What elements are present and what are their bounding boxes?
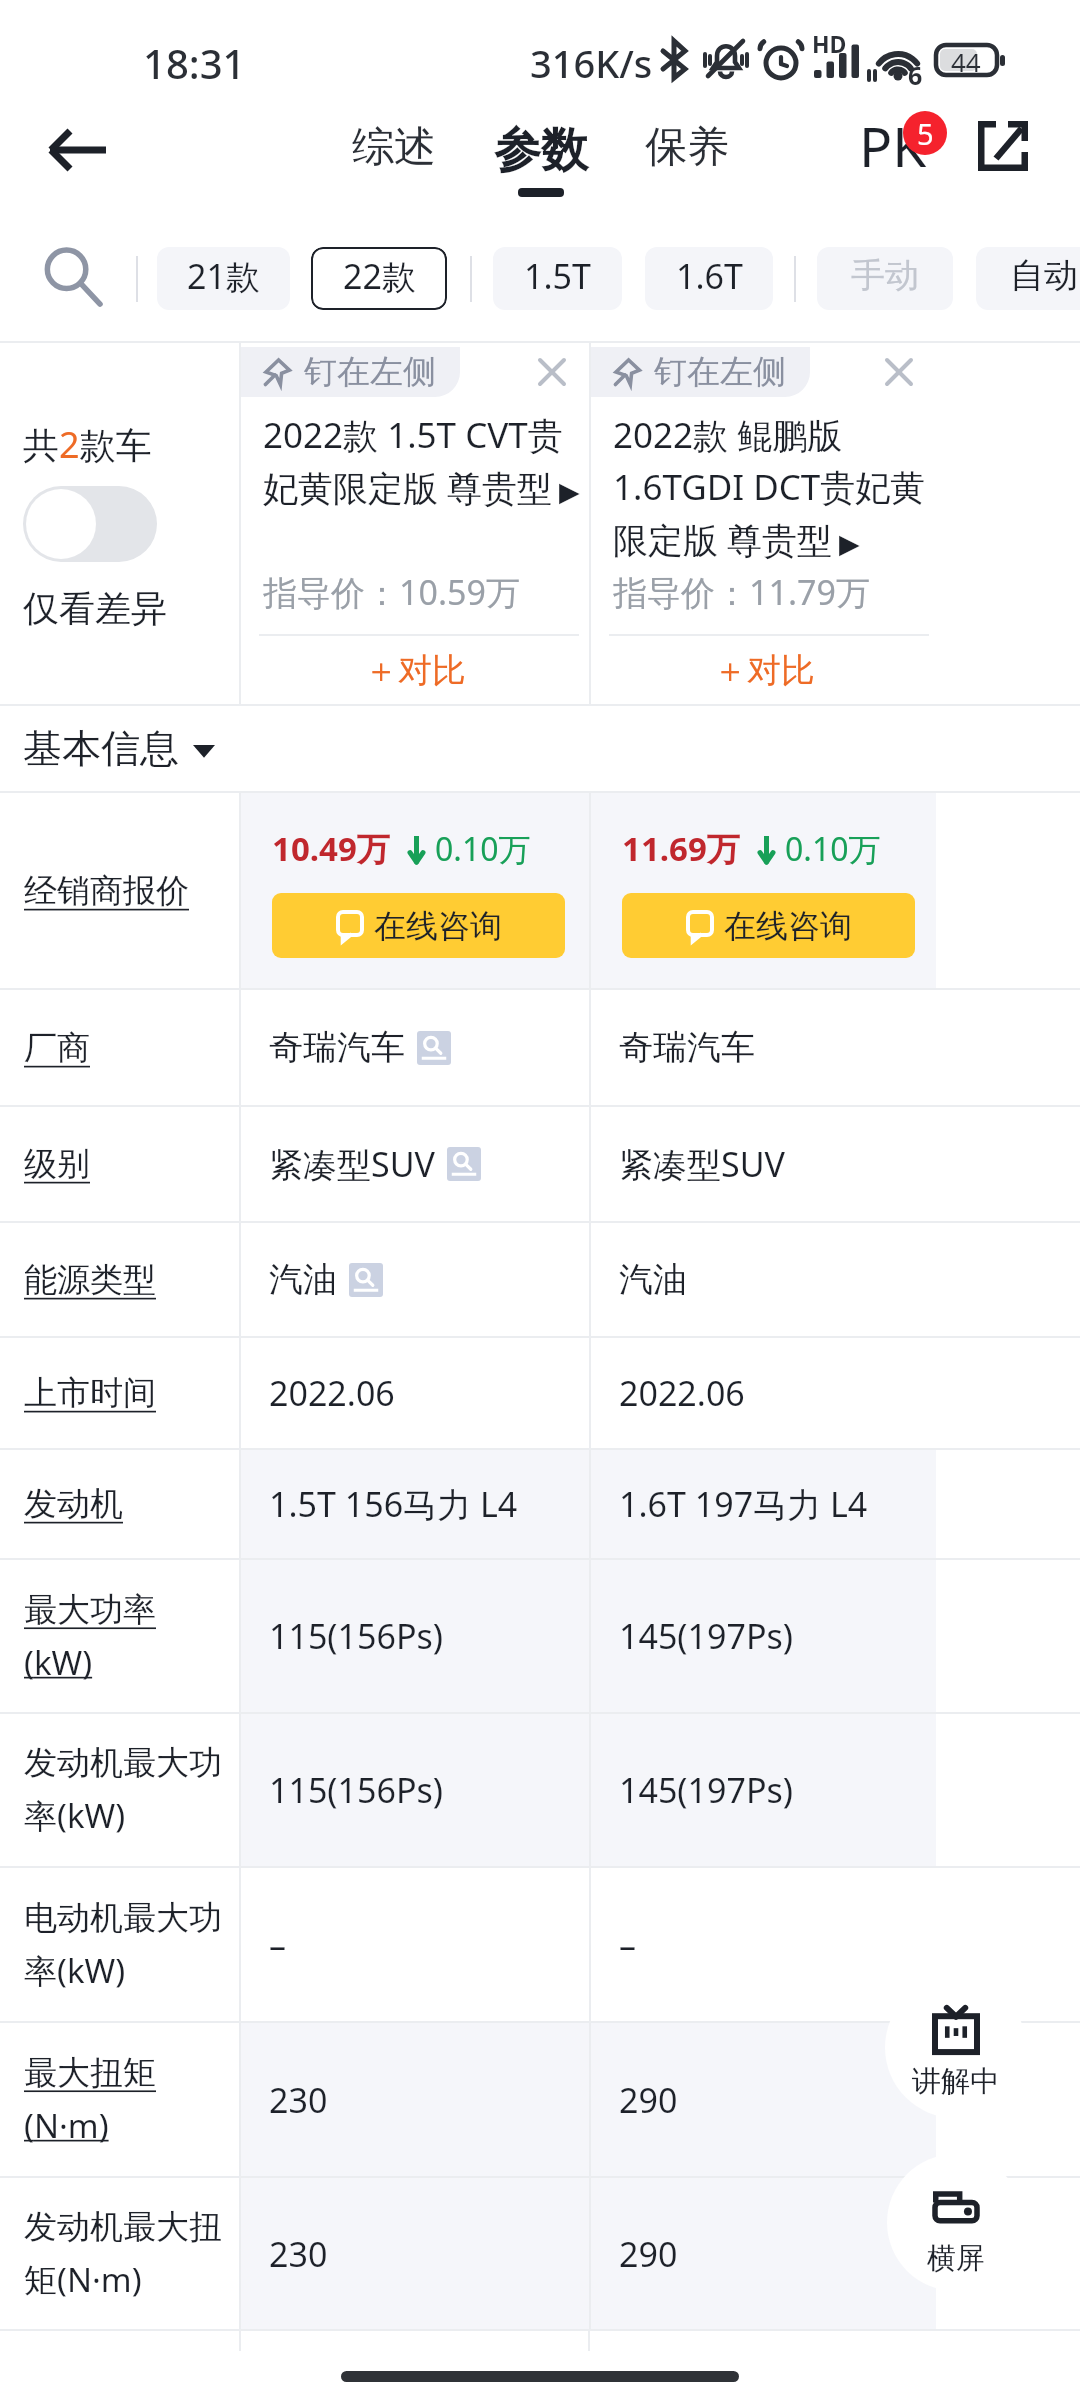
staticText: 手动 [851,254,919,297]
staticText: 1.6T 197马力 L4 [619,1481,868,1527]
button[interactable]: 22款 [311,247,447,310]
staticText: 保养 [645,121,729,174]
staticText: 级别 [24,1143,90,1185]
staticText: 汽油 [619,1258,687,1301]
staticText: 发动机最大功 率(kW) [24,1742,222,1838]
staticText: 1.5T [524,253,591,299]
button[interactable]: Share [955,108,1051,184]
staticText: 综述 [352,121,436,174]
staticText: 0.10万 [785,827,881,871]
button[interactable]: 参数 [480,121,602,197]
button[interactable]: 2022款 鲲鹏版 1.6TGDI DCT贵妃黄 限定版 尊贵型 ▶ [613,411,926,563]
staticText: 紧凑型SUV [269,1141,435,1187]
button[interactable]: 讲解中 [885,1977,1026,2118]
button[interactable]: 钉在左侧 [591,347,810,397]
staticText: 在线咨询 [374,906,502,946]
staticText: 2022款 1.5T CVT贵 妃黄限定版 尊贵型 ▶ [263,411,580,511]
staticText: 1.5T 156马力 L4 [269,1481,518,1527]
staticText: 经销商报价 [24,870,189,912]
staticText: 11.69万 [622,826,740,871]
staticText: – [619,1922,636,1968]
staticText: 6 [908,58,923,92]
staticText: 发动机最大扭 矩(N·m) [24,2206,222,2302]
staticText: 汽油 [269,1258,337,1301]
staticText: 上市时间 [24,1372,156,1414]
staticText: 自动 [1010,254,1078,297]
staticText: 钉在左侧 [654,351,786,393]
button[interactable]: 钉在左侧 [241,347,460,397]
staticText: 290 [619,2077,678,2123]
staticText: 能源类型 [24,1259,156,1301]
button[interactable]: 手动 [817,247,953,310]
staticText: 指导价：11.79万 [613,569,870,615]
button[interactable]: Look up [349,1263,383,1297]
staticText: 21款 [187,253,260,299]
staticText: 115(156Ps) [269,1613,443,1659]
staticText: 22款 [343,253,416,299]
button[interactable]: Only show differences [23,486,157,562]
staticText: 2022.06 [269,1370,395,1416]
button[interactable]: Back [30,108,126,192]
staticText: 最大功率 (kW) [24,1589,156,1684]
staticText: 145(197Ps) [619,1613,793,1659]
staticText: 230 [269,2231,328,2277]
button[interactable]: Close [523,343,581,401]
button[interactable]: 横屏 [887,2154,1024,2291]
button[interactable]: 1.6T [645,247,773,310]
button[interactable]: 在线咨询 [272,893,565,958]
staticText: 316K/s [530,37,653,89]
staticText: 5 [917,114,934,153]
staticText: 10.49万 [272,826,390,871]
staticText: ＋对比 [713,649,815,692]
staticText: 2022.06 [619,1370,745,1416]
staticText: 在线咨询 [724,906,852,946]
staticText: HD [812,28,847,59]
staticText: 18:31 [143,36,246,90]
staticText: 2022款 鲲鹏版 1.6TGDI DCT贵妃黄 限定版 尊贵型 ▶ [613,411,926,563]
staticText: 仅看差异 [23,586,167,631]
staticText: 奇瑞汽车 [619,1026,755,1069]
staticText: 奇瑞汽车 [269,1026,405,1069]
staticText: 参数 [494,121,588,180]
button[interactable]: 2022款 1.5T CVT贵 妃黄限定版 尊贵型 ▶ [263,411,580,511]
staticText: 发动机 [24,1483,123,1525]
button[interactable]: Close [870,343,928,401]
button[interactable]: 21款 [157,247,290,310]
staticText: 钉在左侧 [304,351,436,393]
button[interactable]: 在线咨询 [622,893,915,958]
staticText: 基本信息 [23,724,179,773]
button[interactable]: 基本信息 [0,706,1080,791]
staticText: – [269,1922,286,1968]
staticText: ＋对比 [364,649,466,692]
staticText: 横屏 [927,2240,985,2277]
button[interactable]: 1.5T [493,247,622,310]
button[interactable]: Look up [417,1031,451,1065]
button[interactable]: Look up [447,1147,481,1181]
staticText: 230 [269,2077,328,2123]
staticText: 1.6T [676,253,743,299]
button[interactable]: 保养 [631,121,743,174]
staticText: 共2款车 [23,420,152,469]
staticText: 145(197Ps) [619,1767,793,1813]
staticText: 电动机最大功 率(kW) [24,1897,222,1993]
button[interactable]: ＋对比 [241,636,589,704]
button[interactable]: ＋对比 [591,636,936,704]
button[interactable]: 综述 [338,121,450,174]
button[interactable]: PK compare [855,110,947,190]
button[interactable]: 自动 [976,247,1080,310]
staticText: PK [859,108,927,183]
staticText: 厂商 [24,1027,90,1069]
staticText: 指导价：10.59万 [263,569,520,615]
staticText: 44 [951,44,981,79]
staticText: 讲解中 [912,2063,999,2100]
staticText: 115(156Ps) [269,1767,443,1813]
staticText: 290 [619,2231,678,2277]
staticText: 最大扭矩 (N·m) [24,2052,156,2147]
button[interactable]: Search [36,240,112,316]
staticText: 0.10万 [435,827,531,871]
staticText: 紧凑型SUV [619,1141,785,1187]
